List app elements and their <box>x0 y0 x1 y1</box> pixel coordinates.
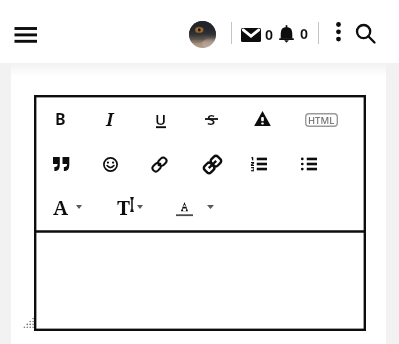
button[interactable]: Warning <box>245 104 279 134</box>
button[interactable]: Quote <box>44 149 78 179</box>
staticText: U <box>155 109 167 129</box>
button[interactable]: Insert link <box>142 149 176 179</box>
button[interactable]: Remove link <box>195 149 229 179</box>
button[interactable]: S <box>194 104 228 134</box>
button[interactable]: Bulleted list <box>292 149 326 179</box>
staticText: B <box>55 108 66 130</box>
button[interactable]: More options <box>329 20 348 44</box>
button[interactable]: T <box>113 194 149 220</box>
other: Notifications <box>278 25 295 43</box>
button[interactable]: Emoji <box>93 149 127 179</box>
staticText: S <box>207 109 216 129</box>
button[interactable]: Messages <box>241 25 274 44</box>
staticText: 0 <box>300 24 309 43</box>
button[interactable]: I <box>93 104 127 134</box>
staticText: I <box>106 107 114 132</box>
button[interactable]: B <box>43 104 77 134</box>
button[interactable]: Notifications <box>278 23 309 44</box>
staticText: HTML <box>308 114 335 127</box>
button[interactable]: A <box>46 194 88 220</box>
button[interactable]: Search <box>354 22 378 46</box>
button[interactable]: HTML <box>305 113 338 127</box>
button[interactable]: Text colour <box>172 196 218 222</box>
staticText: T <box>117 194 131 220</box>
button[interactable]: Profile <box>189 21 216 48</box>
staticText: A <box>53 194 69 220</box>
other: Messages <box>241 28 261 42</box>
button[interactable]: U <box>144 104 178 134</box>
button[interactable]: Menu <box>8 17 44 52</box>
staticText: 0 <box>265 25 274 44</box>
button[interactable]: Numbered list <box>242 149 276 179</box>
